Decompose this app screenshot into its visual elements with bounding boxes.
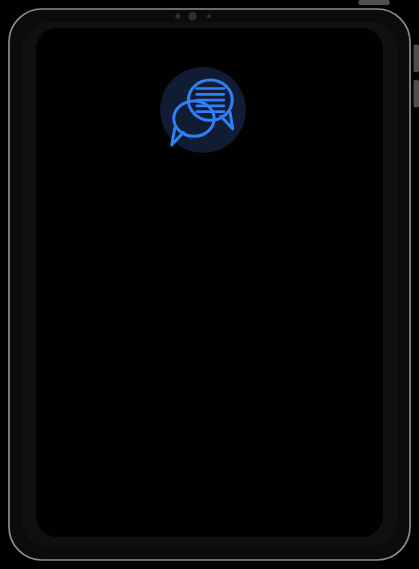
button[interactable]: Chat app icon	[160, 67, 246, 153]
